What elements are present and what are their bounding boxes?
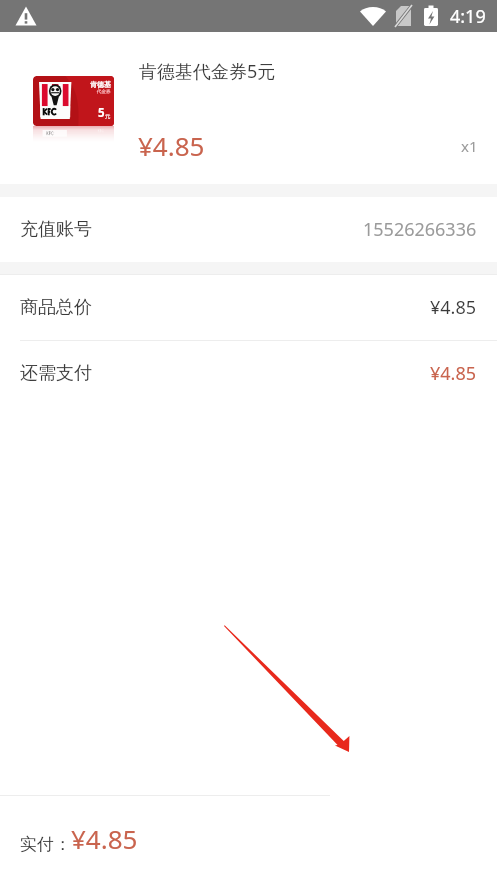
staticText: 充值账号 (20, 218, 92, 241)
staticText: ¥4.85 (430, 295, 477, 320)
staticText: 肯德基 (90, 80, 111, 89)
button[interactable]: 还需支付 (0, 341, 497, 406)
staticText: 4:19 (450, 4, 486, 29)
staticText: ¥4.85 (430, 361, 477, 386)
staticText: ¥4.85 (71, 821, 138, 856)
staticText: ¥4.85 (138, 128, 205, 163)
button[interactable]: 充值账号 (0, 197, 497, 262)
staticText: 商品总价 (20, 296, 92, 319)
button[interactable]: 实付： (0, 796, 330, 884)
staticText: x1 (461, 136, 478, 156)
staticText: 肯德基代金券5元 (139, 59, 276, 84)
staticText: 还需支付 (20, 362, 92, 385)
button[interactable]: 肯德基 (0, 32, 497, 184)
staticText: 15526266336 (363, 217, 477, 242)
staticText: 元 (105, 113, 111, 120)
button[interactable]: 商品总价 (0, 275, 497, 340)
staticText: 实付： (20, 834, 71, 855)
staticText: 5 (98, 105, 105, 121)
staticText: 代金券 (97, 89, 111, 95)
